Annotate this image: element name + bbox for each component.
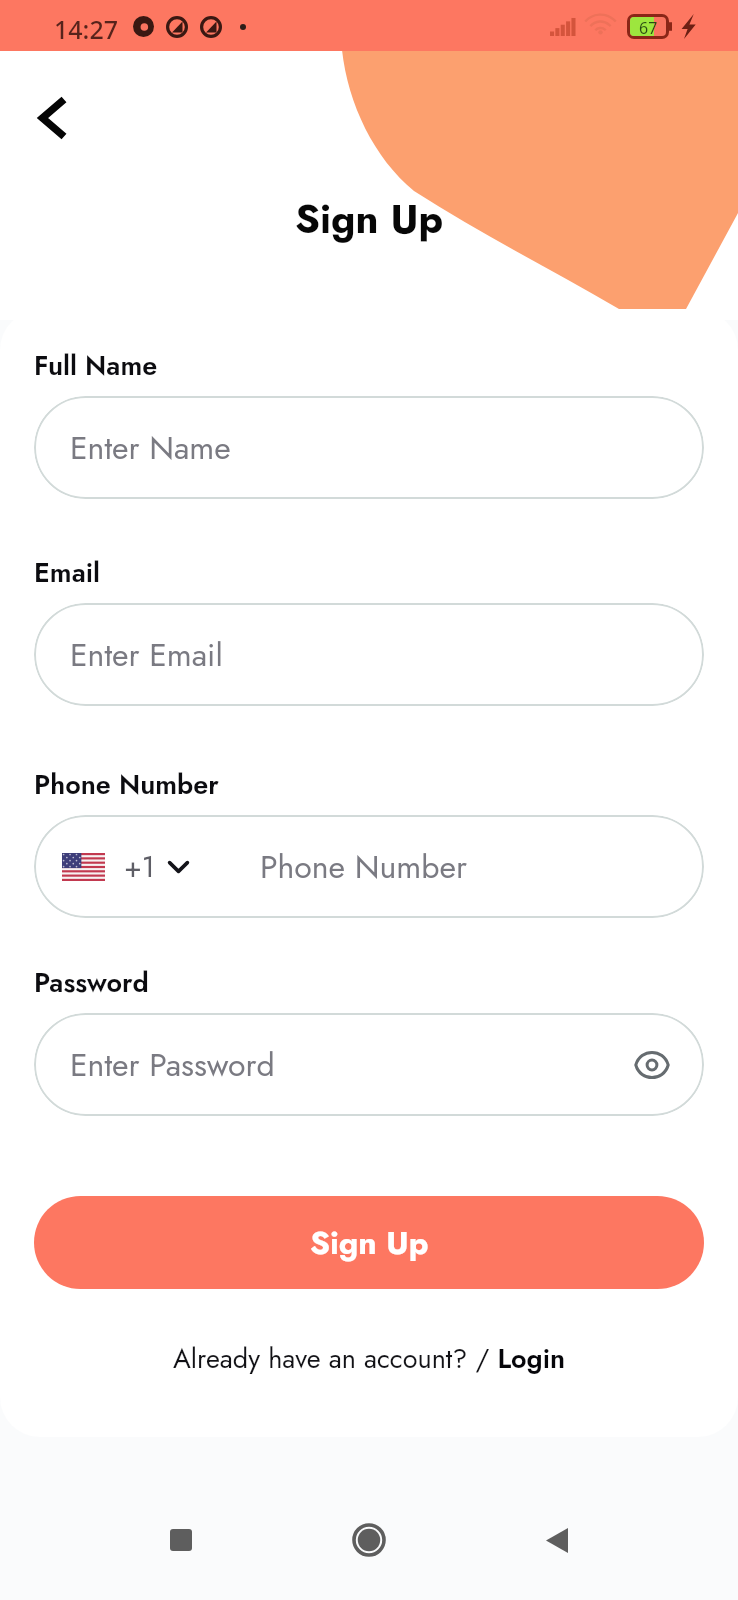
staticText: Password <box>34 963 149 1002</box>
staticText: +1 <box>124 846 155 888</box>
button[interactable]: Show password <box>628 1041 676 1089</box>
button[interactable]: Home <box>334 1505 404 1575</box>
staticText: Full Name <box>34 346 158 385</box>
staticText: Enter Password <box>70 1042 275 1088</box>
button[interactable]: Enter Name <box>34 396 704 499</box>
staticText: Enter Name <box>70 425 231 471</box>
staticText: 14:27 <box>54 12 119 46</box>
staticText: Phone Number <box>34 765 219 804</box>
staticText: 67 <box>639 17 658 36</box>
staticText: Sign Up <box>310 1220 429 1266</box>
staticText: Email <box>34 553 100 592</box>
button[interactable]: Enter Password <box>34 1013 704 1116</box>
button[interactable]: Enter Email <box>34 603 704 706</box>
staticText: Sign Up <box>295 190 444 248</box>
staticText: Phone Number <box>260 844 467 890</box>
button[interactable]: Already have an account? / Login <box>173 1339 566 1378</box>
button[interactable]: Back <box>522 1505 592 1575</box>
button[interactable]: Back <box>16 82 88 154</box>
button[interactable]: Sign Up <box>34 1196 704 1289</box>
button[interactable]: +1 <box>34 815 704 918</box>
staticText: Already have an account? / Login <box>173 1339 566 1378</box>
button[interactable]: Recent apps <box>146 1505 216 1575</box>
staticText: Enter Email <box>70 632 223 678</box>
